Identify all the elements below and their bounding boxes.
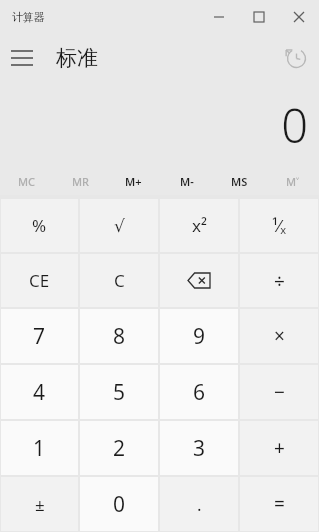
button[interactable]: Close [279, 0, 319, 33]
button[interactable]: ÷ [240, 254, 318, 307]
button[interactable]: MC [0, 168, 54, 195]
staticText: − [274, 379, 285, 405]
button[interactable]: − [240, 365, 318, 419]
button[interactable]: 4 [1, 365, 78, 419]
staticText: = [274, 491, 285, 517]
staticText: × [274, 323, 285, 349]
staticText: 1 [33, 434, 46, 463]
button[interactable]: 0 [80, 477, 158, 531]
button[interactable]: × [240, 309, 318, 363]
button[interactable]: 2 [80, 421, 158, 475]
staticText: 0 [113, 490, 126, 519]
button[interactable]: + [240, 421, 318, 475]
button[interactable]: . [160, 477, 238, 531]
staticText: MC [18, 174, 36, 189]
button[interactable]: C [80, 254, 158, 307]
button[interactable]: Backspace [160, 254, 238, 307]
staticText: C [114, 269, 125, 292]
staticText: ÷ [274, 268, 285, 294]
button[interactable]: M- [160, 168, 213, 195]
button[interactable]: History [274, 36, 318, 80]
button[interactable]: 6 [160, 365, 238, 419]
button[interactable]: 7 [1, 309, 78, 363]
button[interactable]: M˅ [266, 168, 319, 195]
button[interactable]: x² [160, 199, 238, 252]
button[interactable]: = [240, 477, 318, 531]
button[interactable]: 5 [80, 365, 158, 419]
staticText: 5 [113, 378, 126, 407]
staticText: CE [29, 269, 50, 292]
staticText: % [32, 214, 47, 237]
button[interactable]: 3 [160, 421, 238, 475]
staticText: 7 [33, 322, 46, 351]
button[interactable]: CE [1, 254, 78, 307]
staticText: 4 [33, 378, 46, 407]
button[interactable]: MS [213, 168, 266, 195]
staticText: 0 [281, 93, 308, 157]
staticText: √ [114, 216, 125, 236]
staticText: 2 [113, 434, 126, 463]
button[interactable]: √ [80, 199, 158, 252]
button[interactable]: 8 [80, 309, 158, 363]
staticText: MR [72, 174, 90, 189]
staticText: ¹⁄ₓ [272, 214, 287, 237]
staticText: 3 [193, 434, 206, 463]
button[interactable]: MR [54, 168, 107, 195]
staticText: MS [231, 174, 248, 189]
staticText: 6 [193, 378, 206, 407]
button[interactable]: 9 [160, 309, 238, 363]
staticText: 8 [113, 322, 126, 351]
staticText: M+ [125, 174, 142, 189]
button[interactable]: Menu [0, 36, 44, 80]
staticText: 标准 [56, 45, 98, 71]
staticText: M- [180, 174, 194, 189]
button[interactable]: % [1, 199, 78, 252]
button[interactable]: Maximize [239, 0, 279, 33]
staticText: M˅ [286, 174, 300, 189]
button[interactable]: ± [1, 477, 78, 531]
button[interactable]: M+ [107, 168, 160, 195]
staticText: + [274, 435, 285, 461]
button[interactable]: ¹⁄ₓ [240, 199, 318, 252]
staticText: 计算器 [12, 10, 45, 24]
staticText: x² [192, 214, 207, 237]
button[interactable]: Minimize [199, 0, 239, 33]
staticText: ± [35, 493, 45, 516]
staticText: 9 [193, 322, 206, 351]
staticText: . [197, 493, 202, 516]
button[interactable]: 1 [1, 421, 78, 475]
